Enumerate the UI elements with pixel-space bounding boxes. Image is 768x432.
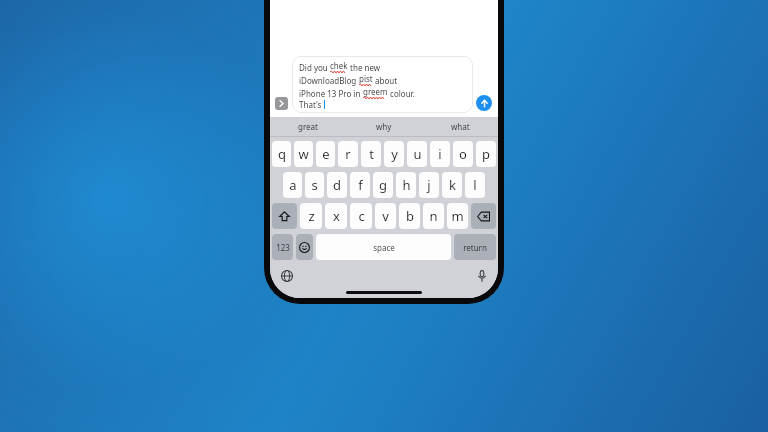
staticText: h — [402, 176, 411, 194]
staticText: i — [438, 145, 442, 163]
button[interactable]: p — [476, 141, 496, 167]
staticText: iPhone 13 Pro in — [299, 88, 363, 99]
staticText: about — [373, 75, 398, 86]
button[interactable]: g — [373, 172, 393, 198]
staticText: space — [373, 242, 395, 253]
button[interactable]: Send — [476, 95, 492, 111]
staticText: b — [406, 207, 414, 225]
button[interactable]: j — [419, 172, 439, 198]
button[interactable]: y — [384, 141, 404, 167]
button[interactable]: b — [399, 203, 420, 229]
staticText: c — [358, 207, 365, 225]
button[interactable]: 123 — [272, 234, 293, 260]
staticText: return — [463, 242, 487, 253]
button[interactable]: f — [350, 172, 370, 198]
staticText: greem — [363, 86, 388, 97]
staticText: t — [369, 145, 374, 163]
button[interactable]: Shift — [272, 203, 297, 229]
staticText: x — [333, 207, 340, 225]
button[interactable]: k — [442, 172, 462, 198]
button[interactable]: what — [422, 117, 498, 136]
button[interactable]: h — [396, 172, 416, 198]
staticText: e — [322, 145, 330, 163]
staticText: p — [482, 145, 490, 163]
button[interactable]: why — [346, 117, 422, 136]
button[interactable]: Dictate — [474, 268, 489, 283]
staticText: pist — [359, 73, 373, 84]
button[interactable]: Backspace — [471, 203, 496, 229]
button[interactable]: a — [283, 172, 302, 198]
staticText: 123 — [276, 242, 290, 253]
staticText: Did you — [299, 62, 330, 73]
staticText: j — [427, 176, 431, 194]
button[interactable]: x — [325, 203, 347, 229]
button[interactable]: v — [375, 203, 396, 229]
button[interactable]: q — [272, 141, 291, 167]
staticText: s — [311, 176, 318, 194]
staticText: colour. — [388, 88, 415, 99]
staticText: That's — [299, 99, 324, 110]
button[interactable]: r — [338, 141, 358, 167]
staticText: what — [451, 121, 470, 132]
staticText: u — [413, 145, 422, 163]
button[interactable]: z — [300, 203, 322, 229]
staticText: k — [449, 176, 456, 194]
staticText: v — [382, 207, 389, 225]
button[interactable]: e — [316, 141, 335, 167]
button[interactable]: l — [465, 172, 485, 198]
staticText: d — [333, 176, 341, 194]
staticText: chek — [330, 60, 348, 71]
staticText: a — [289, 176, 297, 194]
button[interactable]: space — [316, 234, 451, 260]
button[interactable]: Expand — [275, 97, 288, 110]
button[interactable]: great — [270, 117, 346, 136]
staticText: w — [298, 145, 309, 163]
staticText: z — [308, 207, 315, 225]
staticText: f — [358, 176, 363, 194]
staticText: y — [391, 145, 398, 163]
staticText: n — [429, 207, 438, 225]
staticText: o — [459, 145, 467, 163]
button[interactable]: Did you — [292, 56, 473, 113]
button[interactable]: Emoji — [296, 234, 313, 260]
staticText: great — [298, 121, 318, 132]
button[interactable]: d — [327, 172, 347, 198]
button[interactable]: s — [305, 172, 324, 198]
staticText: why — [376, 121, 392, 132]
staticText: the new — [348, 62, 381, 73]
button[interactable]: i — [430, 141, 450, 167]
button[interactable]: return — [454, 234, 496, 260]
button[interactable]: m — [447, 203, 468, 229]
button[interactable]: c — [350, 203, 372, 229]
button[interactable]: o — [453, 141, 473, 167]
button[interactable]: w — [294, 141, 313, 167]
staticText: r — [345, 145, 351, 163]
staticText: m — [451, 207, 464, 225]
staticText: q — [278, 145, 286, 163]
button[interactable]: u — [407, 141, 427, 167]
button[interactable]: t — [361, 141, 381, 167]
staticText: iDownloadBlog — [299, 75, 359, 86]
button[interactable]: Change keyboard — [279, 268, 294, 283]
staticText: l — [473, 176, 477, 194]
button[interactable]: n — [423, 203, 444, 229]
staticText: g — [379, 176, 387, 194]
